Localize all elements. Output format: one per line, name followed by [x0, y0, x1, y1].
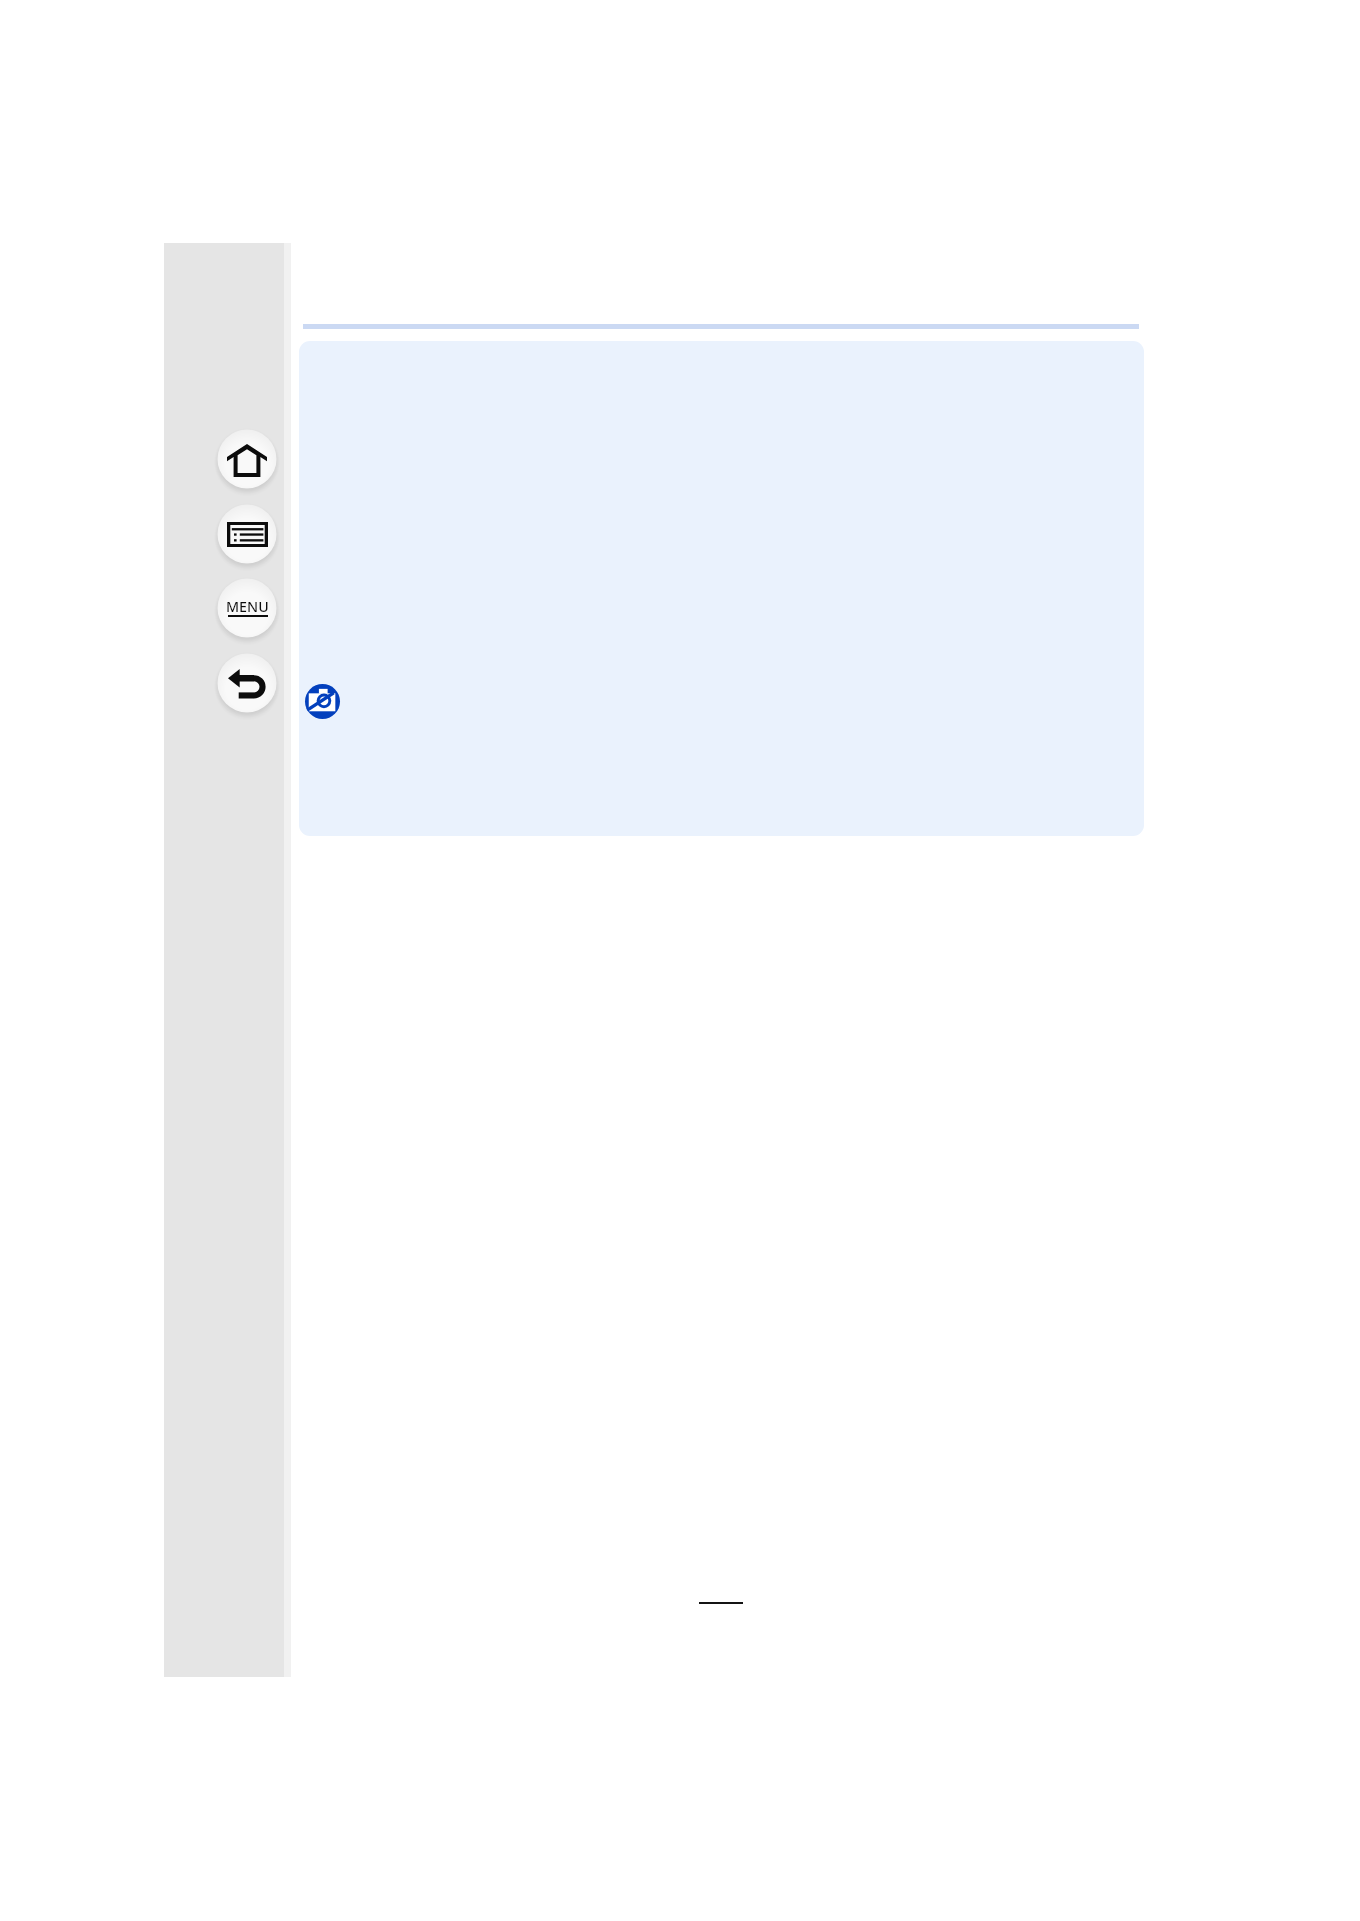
button[interactable]: Not available for still pictures [305, 684, 340, 719]
staticText: MENU [226, 597, 269, 616]
button[interactable]: Menu [214, 575, 280, 641]
button[interactable]: Home [214, 426, 280, 492]
button[interactable]: Table of contents [214, 501, 280, 567]
button[interactable] [299, 341, 1144, 836]
button[interactable]: Back [214, 650, 280, 716]
